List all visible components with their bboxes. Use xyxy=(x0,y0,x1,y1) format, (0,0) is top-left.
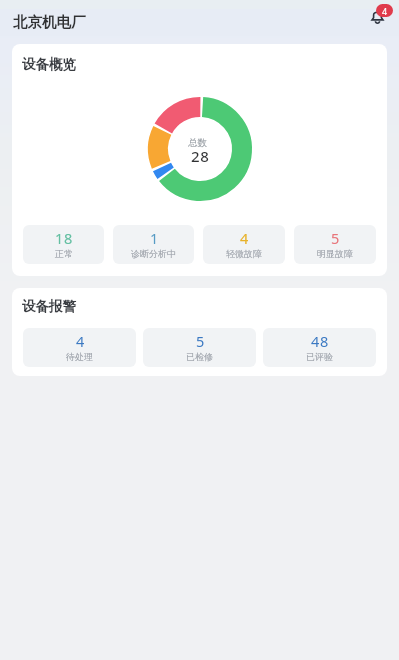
staticText: 设备概览 xyxy=(22,56,76,73)
button[interactable]: Notifications xyxy=(369,2,393,26)
staticText: 4 xyxy=(240,228,250,248)
staticText: 明显故障 xyxy=(317,248,353,259)
button[interactable]: 18 xyxy=(23,225,104,264)
staticText: 48 xyxy=(311,331,330,351)
staticText: 1 xyxy=(150,228,160,248)
staticText: 4 xyxy=(76,331,86,351)
button[interactable]: 4 xyxy=(203,225,285,264)
staticText: 5 xyxy=(196,331,206,351)
staticText: 设备报警 xyxy=(22,298,76,315)
button[interactable]: 5 xyxy=(143,328,256,367)
staticText: 待处理 xyxy=(66,351,93,362)
staticText: 4 xyxy=(382,5,388,17)
staticText: 18 xyxy=(55,228,74,248)
button[interactable]: 48 xyxy=(263,328,376,367)
button[interactable]: 5 xyxy=(294,225,376,264)
staticText: 5 xyxy=(331,228,341,248)
button[interactable]: 1 xyxy=(113,225,194,264)
staticText: 总数 xyxy=(188,137,207,149)
staticText: 北京机电厂 xyxy=(13,13,86,31)
button[interactable]: 4 xyxy=(23,328,136,367)
staticText: 已检修 xyxy=(186,351,213,362)
staticText: 28 xyxy=(191,146,210,166)
staticText: 已评验 xyxy=(306,351,333,362)
staticText: 轻微故障 xyxy=(226,248,262,259)
staticText: 诊断分析中 xyxy=(131,248,176,259)
staticText: 正常 xyxy=(55,248,73,259)
